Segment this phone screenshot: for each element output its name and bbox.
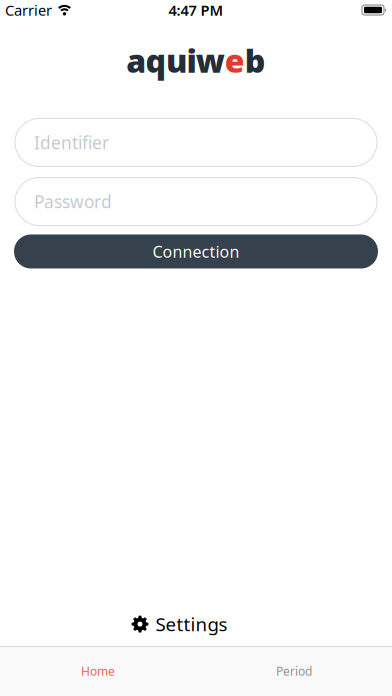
button[interactable]: Period [196, 647, 392, 696]
button[interactable]: Connection [0, 234, 392, 268]
secureTextField[interactable]: Password [34, 190, 358, 213]
button[interactable]: Home [0, 647, 196, 696]
staticText: Identifier [34, 131, 109, 154]
staticText: Identifier [34, 131, 109, 154]
textField[interactable]: Identifier [34, 131, 358, 154]
staticText: Settings [155, 612, 227, 636]
staticText: b [245, 39, 266, 81]
staticText: Password [34, 190, 112, 213]
staticText: aquiw [126, 39, 225, 81]
button[interactable]: Settings [131, 612, 260, 636]
staticText: Password [34, 190, 112, 213]
staticText: Home [81, 663, 115, 679]
staticText: e [225, 39, 245, 81]
staticText: Period [276, 663, 312, 679]
staticText: Connection [152, 241, 239, 262]
staticText: 4:47 PM [168, 0, 223, 20]
staticText: Carrier [5, 0, 52, 20]
